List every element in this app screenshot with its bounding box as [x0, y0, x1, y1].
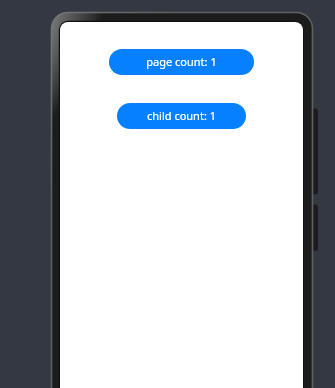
button[interactable]: page count: 1	[109, 49, 254, 75]
staticText: page count: 1	[109, 54, 254, 69]
staticText: child count: 1	[117, 108, 246, 123]
button[interactable]: child count: 1	[117, 103, 246, 129]
